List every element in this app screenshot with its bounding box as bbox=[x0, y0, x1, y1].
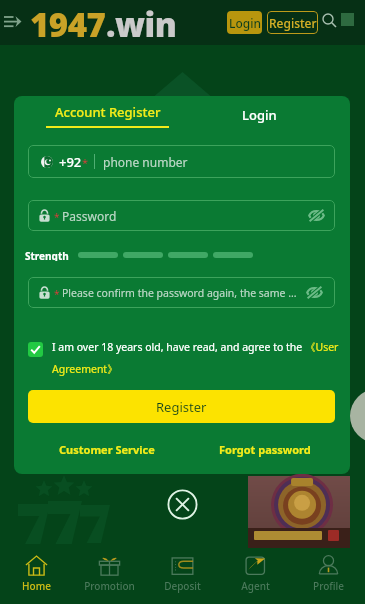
button[interactable]: Promotion bbox=[73, 550, 146, 604]
staticText: .win bbox=[106, 2, 177, 47]
button[interactable]: Login bbox=[227, 11, 262, 34]
staticText: Password bbox=[62, 208, 117, 224]
button[interactable]: Register bbox=[267, 11, 318, 34]
button[interactable]: +92 bbox=[28, 145, 335, 178]
staticText: Profile bbox=[313, 579, 344, 593]
button[interactable]: Search bbox=[322, 13, 337, 28]
staticText: +92 bbox=[59, 153, 82, 171]
button[interactable]: I am over 18 years old, have read, and a… bbox=[52, 340, 342, 377]
button[interactable]: * bbox=[28, 277, 335, 308]
button[interactable]: Customer Service bbox=[59, 442, 155, 457]
button[interactable]: Home bbox=[0, 550, 73, 604]
staticText: Please confirm the password again, the s… bbox=[62, 286, 302, 300]
button[interactable]: Profile bbox=[292, 550, 365, 604]
staticText: I am over 18 years old, have read, and a… bbox=[52, 340, 342, 377]
staticText: Promotion bbox=[84, 579, 135, 593]
staticText: * bbox=[54, 287, 60, 301]
button[interactable]: Menu bbox=[2, 13, 24, 31]
staticText: Login bbox=[229, 15, 261, 31]
staticText: * bbox=[54, 210, 60, 224]
button[interactable]: Account Register bbox=[45, 103, 169, 135]
button[interactable]: Agent bbox=[219, 550, 292, 604]
button[interactable]: Toggle password visibility bbox=[306, 286, 323, 299]
staticText: Account Register bbox=[55, 103, 161, 121]
staticText: phone number bbox=[103, 154, 188, 170]
button[interactable]: * bbox=[28, 200, 335, 231]
staticText: Strength bbox=[25, 249, 69, 261]
staticText: Register bbox=[156, 398, 207, 416]
staticText: Customer Service bbox=[59, 442, 155, 457]
button[interactable]: Forgot password bbox=[219, 442, 311, 457]
staticText: Login bbox=[242, 106, 277, 124]
button[interactable]: Deposit bbox=[146, 550, 219, 604]
staticText: Deposit bbox=[164, 579, 201, 593]
staticText: Forgot password bbox=[219, 442, 311, 457]
button[interactable]: Register bbox=[28, 390, 335, 423]
button[interactable]: Close bbox=[167, 489, 198, 520]
button[interactable]: Toggle password visibility bbox=[308, 209, 325, 222]
staticText: * bbox=[82, 155, 89, 170]
button[interactable]: Agree to terms bbox=[28, 342, 43, 357]
button[interactable]: Login bbox=[226, 103, 292, 127]
staticText: Agent bbox=[241, 579, 270, 593]
staticText: Home bbox=[22, 579, 51, 593]
staticText: Register bbox=[269, 15, 317, 31]
staticText: 1947 bbox=[30, 2, 106, 47]
